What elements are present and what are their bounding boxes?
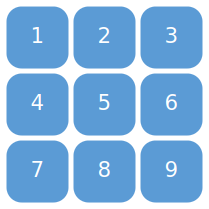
button[interactable]: 2 (73, 6, 135, 68)
staticText: 3 (164, 23, 178, 48)
staticText: 6 (164, 90, 178, 115)
staticText: 9 (164, 157, 178, 182)
button[interactable]: 6 (140, 73, 202, 135)
button[interactable]: 4 (6, 73, 68, 135)
button[interactable]: 1 (6, 6, 68, 68)
staticText: 5 (97, 90, 111, 115)
staticText: 8 (97, 157, 111, 182)
staticText: 1 (30, 23, 44, 48)
button[interactable]: 7 (6, 140, 68, 202)
staticText: 7 (30, 157, 44, 182)
button[interactable]: 8 (73, 140, 135, 202)
staticText: 2 (97, 23, 111, 48)
staticText: 4 (30, 90, 44, 115)
button[interactable]: 9 (140, 140, 202, 202)
button[interactable]: 5 (73, 73, 135, 135)
button[interactable]: 3 (140, 6, 202, 68)
